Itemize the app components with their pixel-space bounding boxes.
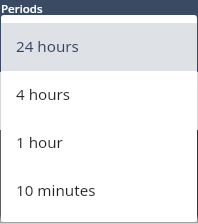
staticText: 4 hours: [16, 84, 71, 105]
staticText: 1 hour: [16, 132, 63, 153]
staticText: Periods: [1, 1, 43, 15]
button[interactable]: 1 hour: [1, 119, 197, 167]
staticText: 24 hours: [16, 36, 79, 57]
button[interactable]: 10 minutes: [1, 167, 197, 215]
staticText: 10 minutes: [16, 180, 96, 201]
button[interactable]: 24 hours: [1, 23, 197, 71]
button[interactable]: 4 hours: [1, 71, 197, 119]
